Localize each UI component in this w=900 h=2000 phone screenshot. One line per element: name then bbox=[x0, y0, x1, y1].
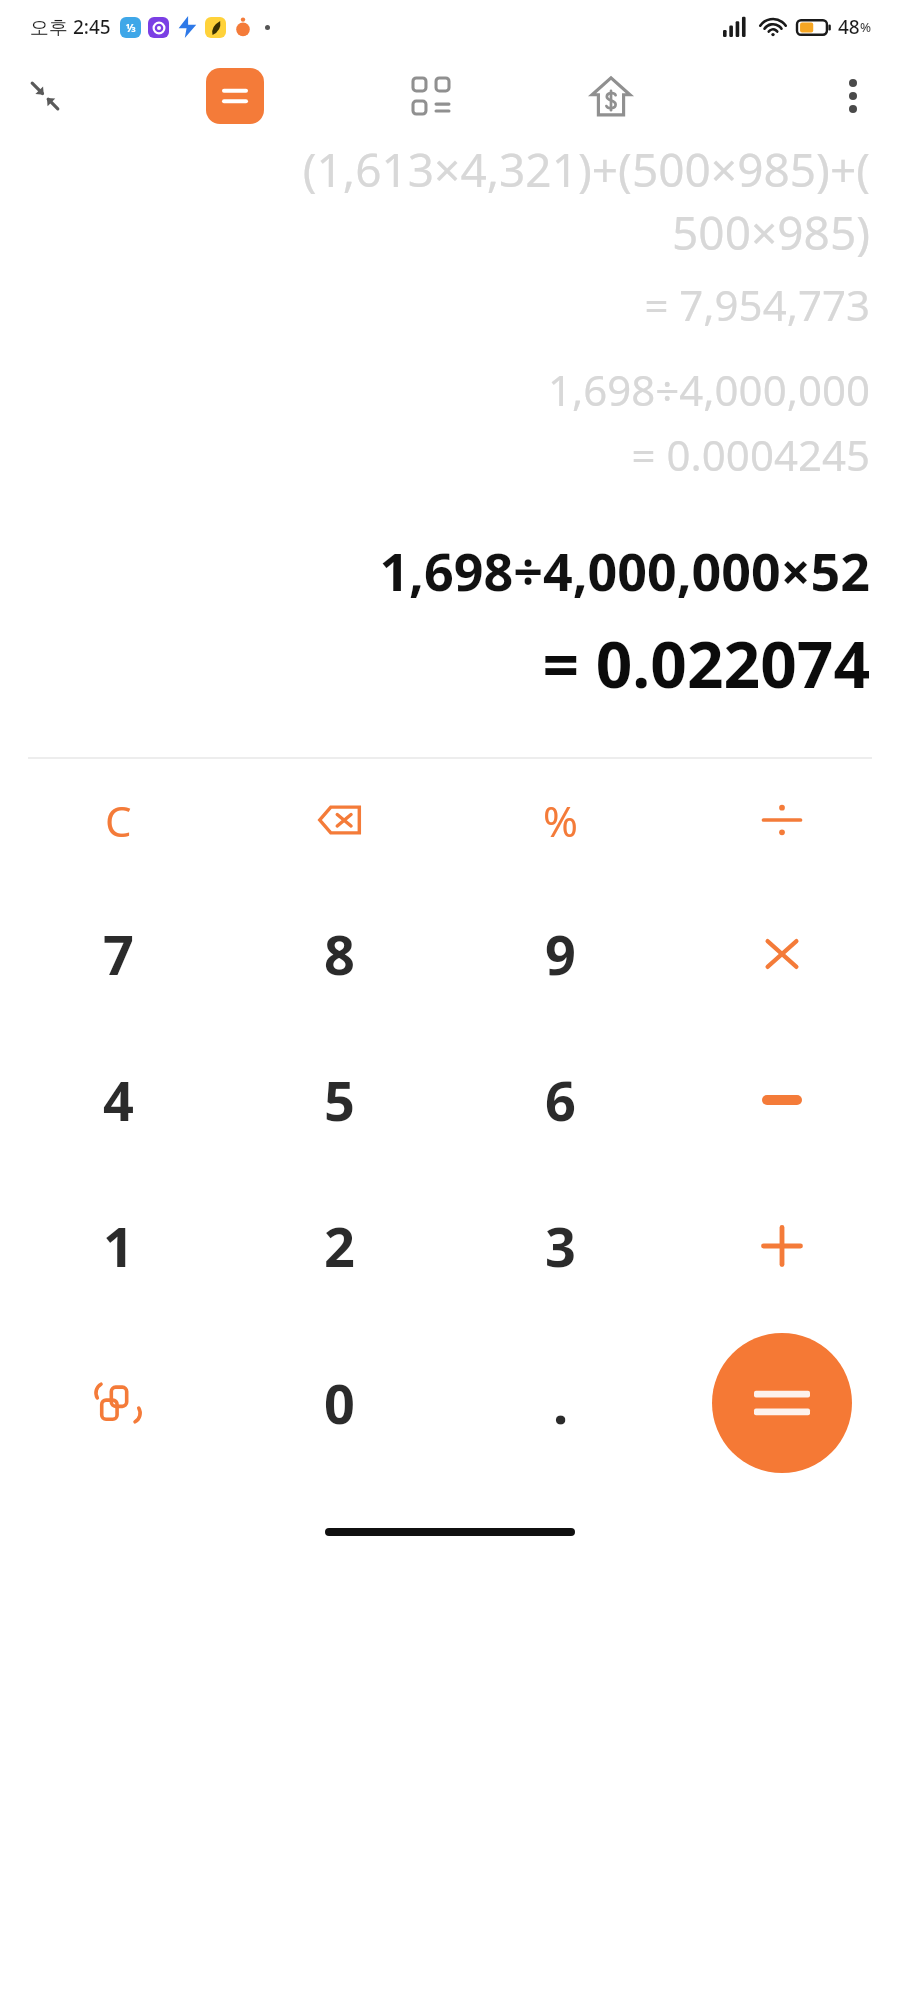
button[interactable]: Equals bbox=[712, 1333, 852, 1473]
button[interactable]: Backspace bbox=[229, 759, 450, 881]
staticText: 3 bbox=[545, 1209, 576, 1283]
button[interactable]: 6 bbox=[450, 1027, 671, 1173]
staticText: ⅓ bbox=[126, 20, 136, 35]
staticText: 1,698÷4,000,000 bbox=[30, 361, 870, 418]
button[interactable]: % bbox=[450, 759, 671, 881]
button[interactable]: Subtract bbox=[671, 1027, 892, 1173]
button[interactable]: Loan calculator bbox=[575, 60, 647, 132]
button[interactable]: 5 bbox=[229, 1027, 450, 1173]
button[interactable]: 8 bbox=[229, 881, 450, 1027]
button[interactable]: C bbox=[8, 759, 229, 881]
button[interactable]: 2 bbox=[229, 1173, 450, 1319]
staticText: . bbox=[553, 1366, 569, 1440]
staticText: (1,613×4,321)+(500×985)+( bbox=[30, 138, 870, 201]
staticText: = 0.022074 bbox=[30, 620, 870, 707]
button[interactable]: Divide bbox=[671, 759, 892, 881]
button[interactable]: 1 bbox=[8, 1173, 229, 1319]
button[interactable]: Dashboard bbox=[400, 65, 462, 127]
staticText: = 7,954,773 bbox=[30, 276, 870, 333]
button[interactable]: 0 bbox=[229, 1319, 450, 1487]
button[interactable]: 4 bbox=[8, 1027, 229, 1173]
staticText: 9 bbox=[545, 917, 576, 991]
staticText: 48 bbox=[838, 14, 860, 40]
button[interactable]: 9 bbox=[450, 881, 671, 1027]
button[interactable]: Calculator bbox=[206, 68, 264, 124]
staticText: = 0.0004245 bbox=[30, 426, 870, 483]
staticText: 1,698÷4,000,000×52 bbox=[30, 535, 870, 606]
staticText: 1 bbox=[103, 1209, 134, 1283]
button[interactable]: More options bbox=[822, 65, 884, 127]
staticText: 6 bbox=[545, 1063, 576, 1137]
button[interactable]: Multiply bbox=[671, 881, 892, 1027]
staticText: 0 bbox=[324, 1366, 355, 1440]
staticText: C bbox=[105, 792, 132, 849]
staticText: 5 bbox=[324, 1063, 355, 1137]
staticText: 2 bbox=[324, 1209, 355, 1283]
button[interactable]: Add bbox=[671, 1173, 892, 1319]
button[interactable]: . bbox=[450, 1319, 671, 1487]
button[interactable]: 3 bbox=[450, 1173, 671, 1319]
staticText: 오후 2:45 bbox=[30, 14, 111, 40]
staticText: 8 bbox=[324, 917, 355, 991]
staticText: 500×985) bbox=[30, 201, 870, 264]
staticText: % bbox=[860, 18, 872, 36]
button[interactable]: Convert bbox=[8, 1319, 229, 1487]
staticText: 4 bbox=[103, 1063, 134, 1137]
button[interactable]: Collapse bbox=[14, 65, 76, 127]
staticText: 7 bbox=[103, 917, 134, 991]
staticText: % bbox=[543, 792, 578, 849]
button[interactable]: 7 bbox=[8, 881, 229, 1027]
